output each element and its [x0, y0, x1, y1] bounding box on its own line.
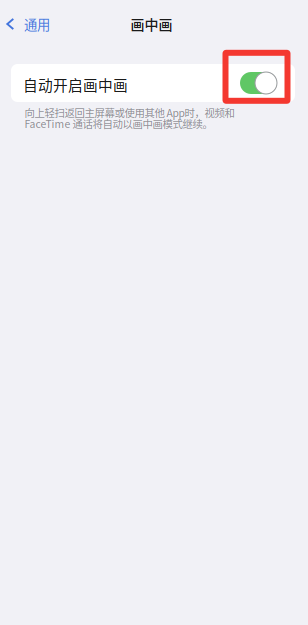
staticText: 向上轻扫返回主屏幕或使用其他 App时，视频和: [24, 105, 234, 120]
staticText: FaceTime 通话将自动以画中画模式继续。: [24, 116, 212, 131]
staticText: 自动开启画中画: [23, 74, 128, 95]
button[interactable]: 自动开启画中画: [11, 64, 295, 102]
button[interactable]: 自动开启画中画: [240, 72, 277, 94]
button[interactable]: 通用: [0, 11, 58, 37]
staticText: 画中画: [130, 14, 172, 34]
staticText: 通用: [24, 14, 50, 34]
